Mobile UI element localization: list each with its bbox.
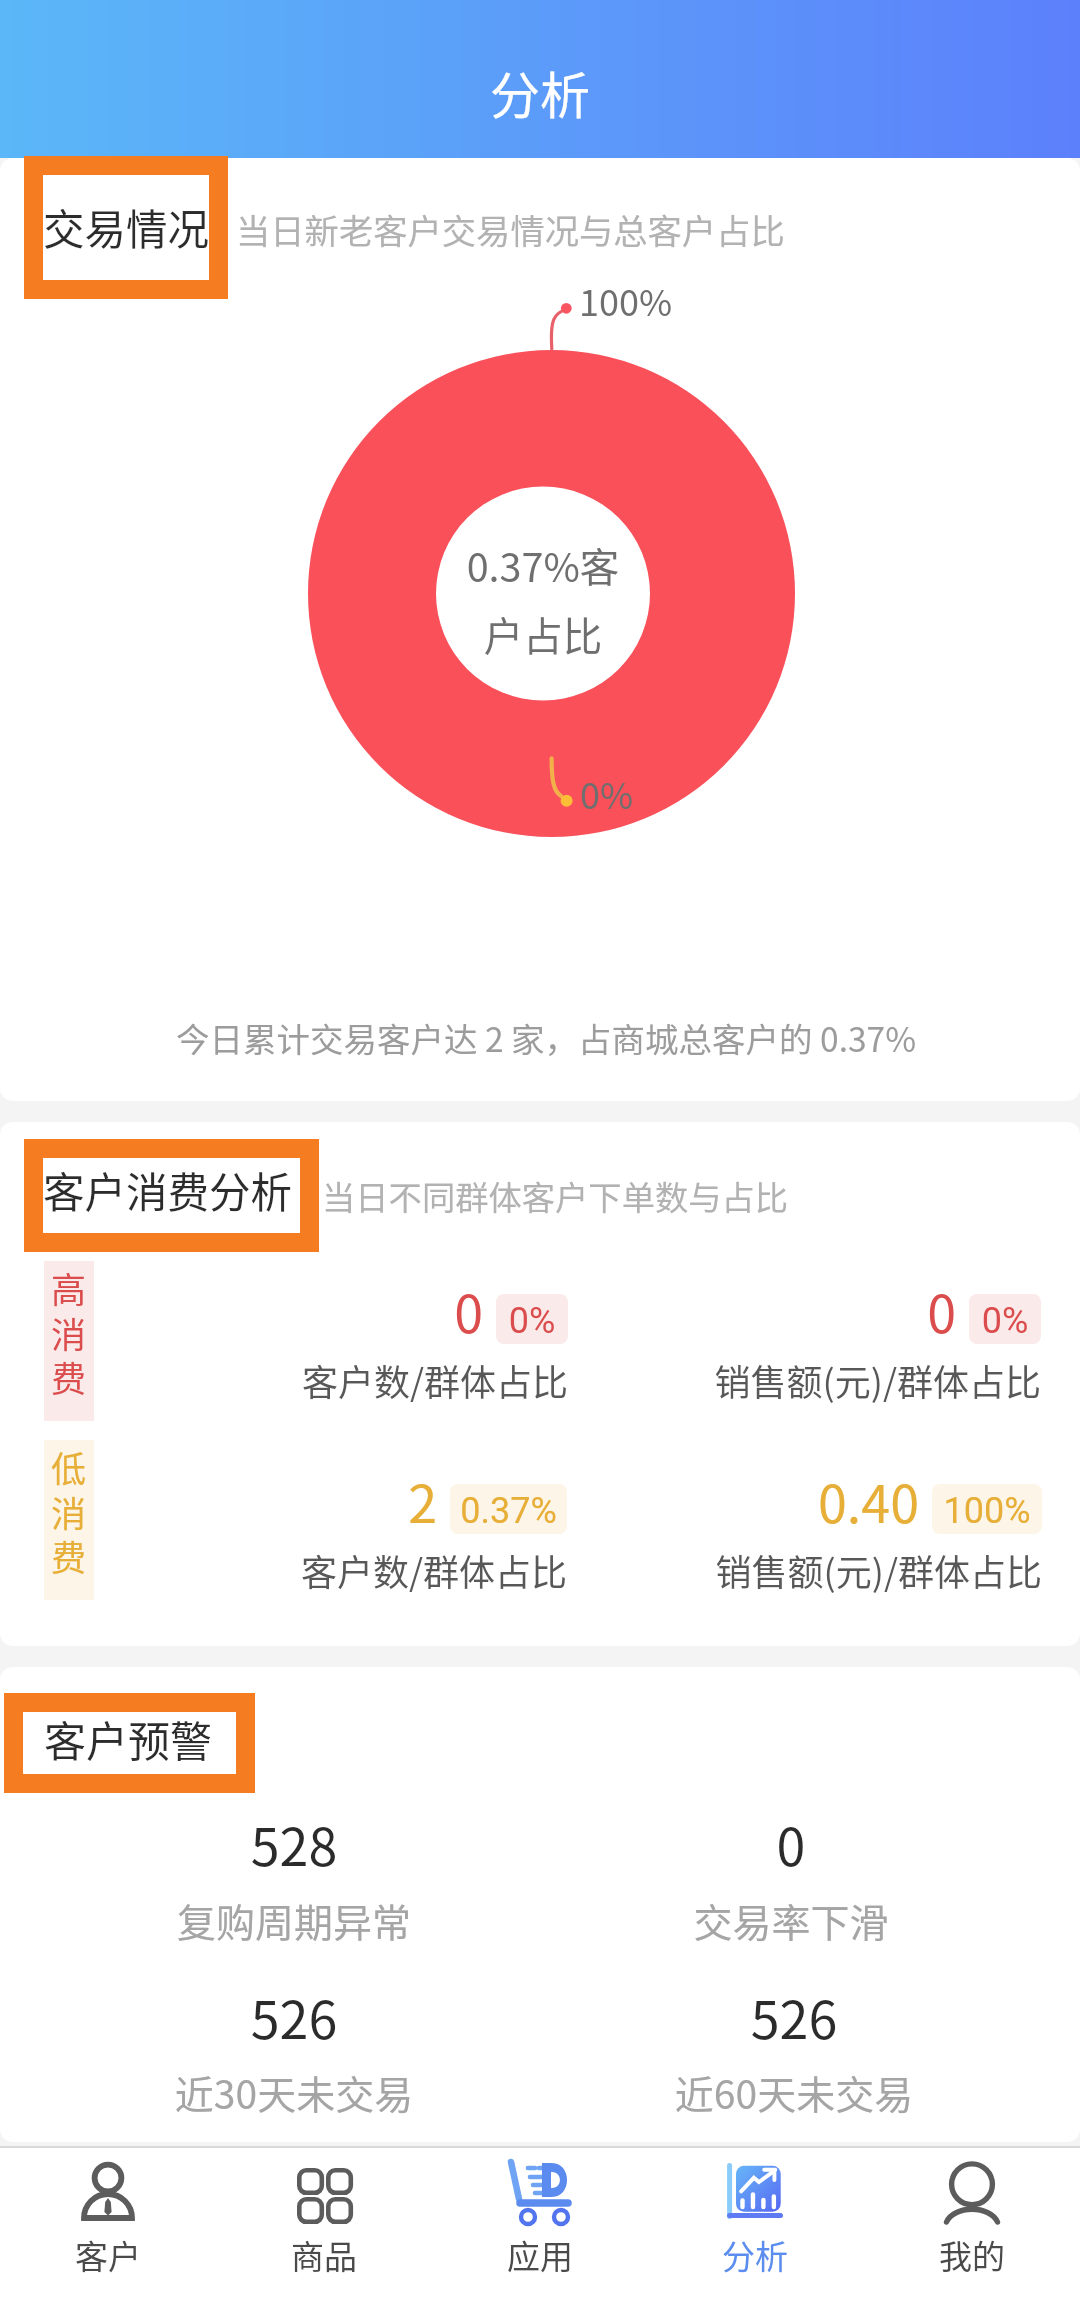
button[interactable]: 客户 bbox=[0, 2148, 216, 2298]
button[interactable]: 客户预警 bbox=[0, 1691, 1080, 1761]
staticText: 消 bbox=[51, 1307, 87, 1358]
staticText: 100% bbox=[932, 1490, 1042, 1532]
staticText: 费 bbox=[51, 1530, 87, 1581]
staticText: 客户数/群体占比 bbox=[0, 1544, 567, 1596]
staticText: 商品 bbox=[216, 2231, 432, 2279]
staticText: 我的 bbox=[864, 2231, 1080, 2279]
button[interactable]: 交易情况 bbox=[0, 178, 1080, 250]
staticText: 2 bbox=[177, 1463, 437, 1538]
staticText: 户占比 bbox=[443, 605, 643, 662]
staticText: 近60天未交易 bbox=[544, 2064, 1044, 2120]
staticText: 高 bbox=[51, 1262, 87, 1313]
staticText: 0 bbox=[541, 1806, 1041, 1881]
staticText: 分析 bbox=[647, 2231, 863, 2279]
staticText: 526 bbox=[544, 1979, 1044, 2054]
staticText: 526 bbox=[44, 1979, 544, 2054]
staticText: 分析 bbox=[0, 56, 1080, 128]
staticText: 当日不同群体客户下单数与占比 bbox=[322, 1171, 789, 1219]
staticText: 0% bbox=[496, 1300, 568, 1342]
button[interactable]: 客户消费分析 bbox=[0, 1142, 1080, 1214]
staticText: 100% bbox=[579, 274, 673, 326]
staticText: 0.40 bbox=[659, 1463, 919, 1538]
staticText: 客户消费分析 bbox=[43, 1160, 293, 1220]
staticText: 近30天未交易 bbox=[44, 2064, 544, 2120]
staticText: 当日新老客户交易情况与总客户占比 bbox=[236, 204, 785, 254]
staticText: 客户数/群体占比 bbox=[0, 1354, 568, 1406]
staticText: 0.37%客 bbox=[443, 536, 643, 593]
staticText: 0.37% bbox=[450, 1490, 567, 1532]
staticText: 交易率下滑 bbox=[541, 1892, 1041, 1948]
staticText: 0% bbox=[580, 767, 634, 819]
staticText: 费 bbox=[51, 1351, 87, 1402]
staticText: 复购周期异常 bbox=[44, 1892, 544, 1948]
staticText: 低 bbox=[51, 1441, 87, 1492]
button[interactable]: 应用 bbox=[432, 2148, 648, 2298]
staticText: 客户 bbox=[0, 2231, 216, 2279]
staticText: 528 bbox=[44, 1806, 544, 1881]
staticText: 0 bbox=[223, 1273, 483, 1348]
staticText: 0 bbox=[696, 1273, 956, 1348]
staticText: 应用 bbox=[432, 2231, 648, 2279]
staticText: 销售额(元)/群体占比 bbox=[442, 1544, 1042, 1596]
button[interactable]: 分析 bbox=[647, 2148, 863, 2298]
staticText: 客户预警 bbox=[44, 1708, 213, 1769]
button[interactable]: 我的 bbox=[864, 2148, 1080, 2298]
staticText: 销售额(元)/群体占比 bbox=[441, 1354, 1041, 1406]
staticText: 交易情况 bbox=[43, 197, 210, 257]
staticText: 消 bbox=[51, 1486, 87, 1537]
staticText: 0% bbox=[969, 1300, 1041, 1342]
staticText: 今日累计交易客户达 2 家，占商城总客户的 0.37% bbox=[6, 1013, 1080, 1062]
button[interactable]: 商品 bbox=[216, 2148, 432, 2298]
